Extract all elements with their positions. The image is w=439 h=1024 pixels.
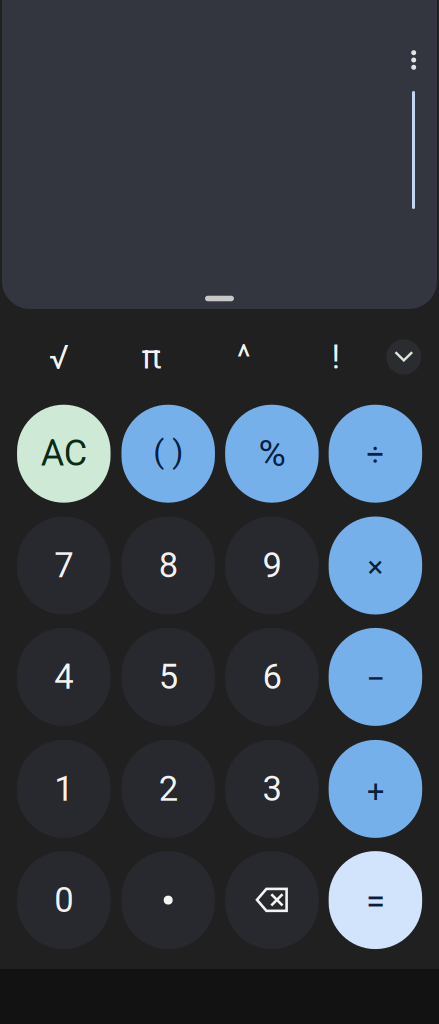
staticText: 7: [54, 545, 73, 586]
button[interactable]: −: [329, 628, 422, 726]
button[interactable]: 6: [225, 628, 319, 726]
staticText: √: [49, 337, 69, 377]
staticText: 2: [159, 769, 178, 809]
button[interactable]: 2: [121, 740, 215, 838]
staticText: ×: [367, 550, 383, 584]
staticText: !: [331, 337, 340, 377]
button[interactable]: ^: [212, 328, 276, 386]
staticText: 5: [159, 657, 178, 697]
staticText: 6: [262, 657, 281, 697]
button[interactable]: !: [304, 328, 368, 386]
button[interactable]: ×: [329, 516, 422, 614]
staticText: 1: [54, 769, 73, 809]
staticText: +: [367, 773, 384, 809]
button[interactable]: More options: [392, 38, 436, 82]
button[interactable]: √: [27, 328, 91, 386]
button[interactable]: AC: [17, 405, 110, 503]
staticText: ^: [237, 337, 251, 377]
staticText: 9: [262, 545, 281, 586]
button[interactable]: Decimal point: [121, 851, 215, 949]
button[interactable]: %: [225, 405, 319, 503]
button[interactable]: π: [120, 328, 184, 386]
staticText: −: [366, 659, 385, 698]
button[interactable]: =: [329, 851, 422, 949]
button[interactable]: Delete: [225, 851, 319, 949]
staticText: =: [366, 881, 385, 922]
staticText: 4: [54, 657, 73, 697]
button[interactable]: 4: [17, 628, 110, 726]
button[interactable]: 0: [17, 851, 110, 949]
staticText: π: [142, 337, 162, 377]
staticText: 0: [54, 880, 73, 920]
staticText: %: [258, 431, 285, 475]
button[interactable]: 8: [121, 516, 215, 614]
button[interactable]: 1: [17, 740, 110, 838]
staticText: 3: [262, 769, 281, 809]
button[interactable]: 7: [17, 516, 110, 614]
button[interactable]: ÷: [329, 405, 422, 503]
staticText: 8: [159, 545, 178, 586]
staticText: AC: [41, 432, 87, 474]
button[interactable]: 3: [225, 740, 319, 838]
button[interactable]: ( ): [121, 405, 215, 503]
button[interactable]: +: [329, 740, 422, 838]
staticText: ( ): [153, 433, 183, 470]
button[interactable]: 9: [225, 516, 319, 614]
button[interactable]: Collapse: [380, 333, 428, 381]
button[interactable]: 5: [121, 628, 215, 726]
staticText: ÷: [366, 437, 384, 473]
